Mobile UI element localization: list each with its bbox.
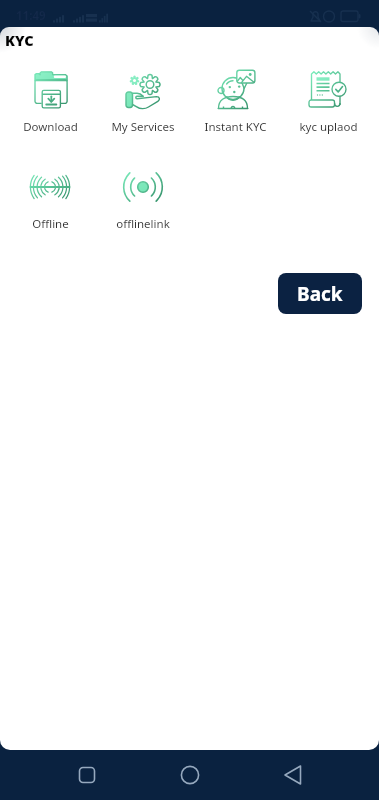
staticText: offlinelink — [116, 216, 170, 232]
staticText: Instant KYC — [204, 119, 267, 135]
staticText: Offline — [32, 216, 69, 232]
staticText: kyc uplaod — [299, 119, 358, 135]
button[interactable]: Back — [241, 750, 344, 800]
button[interactable]: Home — [138, 750, 241, 800]
button[interactable]: kyc uplaod — [282, 70, 375, 135]
staticText: KYC — [5, 30, 34, 50]
button[interactable]: Back — [278, 273, 362, 314]
staticText: Back — [297, 281, 343, 307]
button[interactable]: offlinelink — [96, 167, 189, 232]
button[interactable]: Recent apps — [35, 750, 138, 800]
button[interactable]: Instant KYC — [189, 70, 282, 135]
button[interactable]: Download — [4, 70, 96, 135]
staticText: My Services — [111, 119, 175, 135]
staticText: 11:49 — [16, 8, 46, 24]
button[interactable]: Offline — [4, 167, 96, 232]
staticText: Download — [23, 119, 78, 135]
button[interactable]: My Services — [96, 70, 189, 135]
